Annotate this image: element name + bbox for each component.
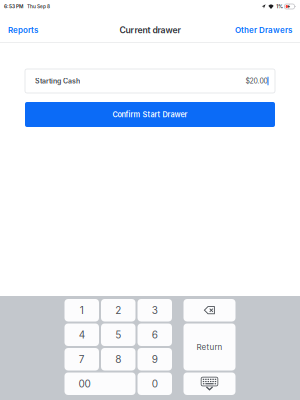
- button[interactable]: 5: [101, 323, 135, 346]
- staticText: 1%: [276, 4, 283, 9]
- staticText: 5: [115, 329, 121, 341]
- staticText: Thu Sep 8: [27, 4, 50, 9]
- button[interactable]: Reports: [6, 22, 40, 38]
- staticText: Reports: [8, 25, 38, 35]
- staticText: 9: [152, 353, 158, 365]
- button[interactable]: Confirm Start Drawer: [25, 102, 275, 127]
- button[interactable]: 9: [137, 348, 172, 370]
- button[interactable]: Return: [183, 323, 235, 370]
- staticText: 2: [115, 304, 121, 316]
- staticText: 6: [152, 329, 158, 341]
- button[interactable]: 0: [137, 372, 172, 395]
- staticText: 7: [79, 353, 85, 365]
- staticText: 3: [152, 304, 158, 316]
- button[interactable]: Delete: [183, 299, 235, 321]
- staticText: 4: [79, 329, 85, 341]
- staticText: Confirm Start Drawer: [112, 110, 187, 119]
- button[interactable]: 2: [101, 299, 135, 321]
- button[interactable]: 00: [64, 372, 135, 395]
- button[interactable]: 8: [101, 348, 135, 370]
- button[interactable]: 7: [64, 348, 99, 370]
- button[interactable]: 4: [64, 323, 99, 346]
- button[interactable]: Dismiss keyboard: [183, 372, 235, 395]
- button[interactable]: 6: [137, 323, 172, 346]
- staticText: 6:53 PM: [4, 4, 23, 9]
- staticText: Starting Cash: [35, 77, 80, 85]
- button[interactable]: 3: [137, 299, 172, 321]
- button[interactable]: Other Drawers: [233, 22, 294, 38]
- staticText: Other Drawers: [235, 25, 292, 35]
- button[interactable]: 1: [64, 299, 99, 321]
- staticText: 00: [78, 378, 90, 390]
- staticText: Current drawer: [119, 25, 180, 35]
- staticText: $20.00: [245, 77, 267, 85]
- staticText: 0: [152, 378, 158, 390]
- staticText: 8: [115, 353, 121, 365]
- staticText: Return: [196, 342, 222, 352]
- staticText: 1: [80, 304, 84, 316]
